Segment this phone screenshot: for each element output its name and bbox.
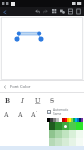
button[interactable]: Shapes [59, 8, 66, 15]
button[interactable]: Clear format [27, 107, 41, 122]
button[interactable]: Font Color [0, 81, 84, 92]
button[interactable]: Tools [67, 8, 74, 15]
button[interactable]: Insert [51, 8, 58, 15]
staticText: A [31, 110, 36, 119]
button[interactable]: Font size up [0, 107, 13, 122]
button[interactable]: Font size down [13, 107, 27, 122]
button[interactable]: U [30, 93, 45, 107]
staticText: Font Color [10, 84, 31, 90]
button[interactable]: Redo [42, 8, 49, 15]
staticText: B [5, 95, 11, 105]
staticText: U [35, 95, 41, 105]
button[interactable]: Undo [34, 8, 41, 15]
staticText: A [4, 110, 9, 119]
staticText: S [50, 95, 55, 105]
staticText: A [18, 110, 23, 119]
button[interactable]: More [75, 8, 82, 15]
button[interactable]: Swatch [62, 122, 69, 130]
button[interactable]: Automatic [47, 108, 83, 116]
button[interactable]: B [0, 93, 15, 107]
staticText: ˣ [36, 110, 38, 114]
button[interactable]: Back [2, 9, 8, 15]
staticText: Automatic [53, 108, 69, 112]
button[interactable]: I [15, 93, 30, 107]
staticText: I [21, 95, 24, 105]
staticText: Same [53, 112, 62, 116]
button[interactable]: S [45, 93, 60, 107]
